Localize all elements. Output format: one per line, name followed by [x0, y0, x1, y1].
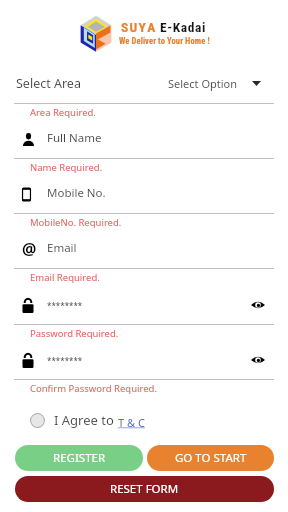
- staticText: Mobile No.: [47, 185, 106, 201]
- button[interactable]: @: [0, 235, 288, 265]
- button[interactable]: ********: [0, 346, 288, 376]
- staticText: ********: [47, 300, 83, 311]
- button[interactable]: Select Area: [0, 70, 288, 103]
- staticText: Name Required.: [30, 161, 103, 174]
- staticText: I Agree to: [54, 411, 114, 429]
- staticText: Select Option: [168, 76, 238, 91]
- staticText: RESET FORM: [110, 481, 179, 497]
- staticText: Area Required.: [30, 106, 96, 119]
- staticText: E-Kadai: [160, 19, 206, 35]
- button[interactable]: Full Name: [0, 125, 288, 155]
- staticText: Select Area: [16, 75, 81, 92]
- button[interactable]: T & C: [118, 415, 145, 430]
- staticText: REGISTER: [53, 450, 106, 466]
- staticText: GO TO START: [175, 450, 247, 466]
- button[interactable]: RESET FORM: [15, 476, 274, 502]
- button[interactable]: Show password: [251, 301, 265, 309]
- staticText: MobileNo. Required.: [30, 216, 122, 229]
- other: I agree checkbox: [30, 413, 45, 428]
- staticText: @: [22, 238, 37, 260]
- staticText: Password Required.: [30, 327, 119, 340]
- button[interactable]: REGISTER: [15, 445, 143, 471]
- staticText: Email Required.: [30, 271, 100, 284]
- staticText: ********: [47, 355, 83, 366]
- staticText: Email: [47, 240, 77, 256]
- staticText: Full Name: [47, 130, 102, 146]
- button[interactable]: I agree checkbox: [30, 409, 145, 431]
- staticText: We Deliver to Your Home !: [119, 36, 210, 46]
- staticText: Confirm Password Required.: [30, 382, 157, 395]
- staticText: S U Y A: [121, 19, 155, 35]
- button[interactable]: GO TO START: [147, 445, 274, 471]
- button[interactable]: ********: [0, 291, 288, 321]
- button[interactable]: Mobile No.: [0, 180, 288, 210]
- button[interactable]: Show password: [251, 356, 265, 364]
